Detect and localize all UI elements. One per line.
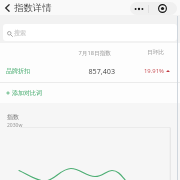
staticText: 2030w bbox=[7, 122, 23, 129]
staticText: 19.91% bbox=[144, 67, 164, 75]
button[interactable]: Back bbox=[0, 0, 13, 15]
staticText: 指数详情 bbox=[14, 2, 52, 14]
staticText: 添加对比词 bbox=[12, 89, 42, 97]
button[interactable]: 添加对比词 bbox=[0, 83, 180, 103]
staticText: 857,403 bbox=[85, 66, 115, 76]
staticText: 搜索 bbox=[14, 29, 26, 37]
button[interactable]: 搜索 bbox=[3, 24, 177, 41]
button[interactable]: More options bbox=[130, 2, 148, 15]
button[interactable]: Close bbox=[148, 2, 177, 15]
staticText: 7月18日指数 bbox=[71, 49, 111, 57]
staticText: 指数 bbox=[7, 113, 19, 121]
staticText: 品牌折扣 bbox=[6, 67, 30, 75]
staticText: 日环比 bbox=[140, 49, 164, 56]
